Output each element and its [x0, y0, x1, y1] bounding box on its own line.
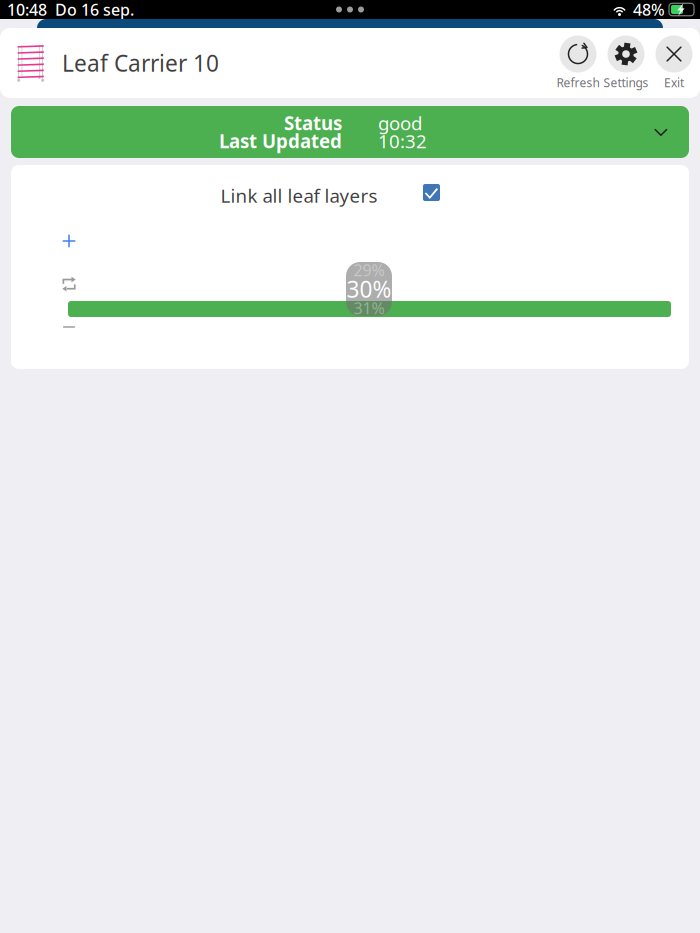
button[interactable]: Exit — [650, 35, 698, 91]
staticText: Link all leaf layers — [220, 183, 377, 208]
staticText: 30% — [346, 274, 391, 304]
button[interactable]: Toggle direction — [56, 271, 82, 297]
staticText: Do 16 sep. — [55, 0, 134, 20]
staticText: 10:32 — [378, 129, 427, 153]
staticText: 29% — [353, 259, 384, 281]
button[interactable]: Status — [11, 106, 689, 158]
staticText: Last Updated — [219, 129, 342, 153]
staticText: Status — [284, 111, 342, 135]
staticText: good — [378, 111, 422, 135]
staticText: Leaf Carrier 10 — [62, 48, 219, 78]
staticText: 48% — [633, 0, 665, 20]
button[interactable]: Link all leaf layers — [423, 184, 440, 201]
staticText: Settings — [603, 74, 648, 90]
staticText: 10:48 — [7, 0, 47, 20]
staticText: Refresh — [556, 74, 599, 90]
button[interactable]: Increase — [56, 228, 82, 254]
staticText: 31% — [353, 297, 384, 319]
button[interactable]: Refresh — [554, 35, 602, 91]
button[interactable]: Decrease — [56, 314, 82, 340]
button[interactable]: Settings — [602, 35, 650, 91]
staticText: Exit — [664, 74, 684, 90]
